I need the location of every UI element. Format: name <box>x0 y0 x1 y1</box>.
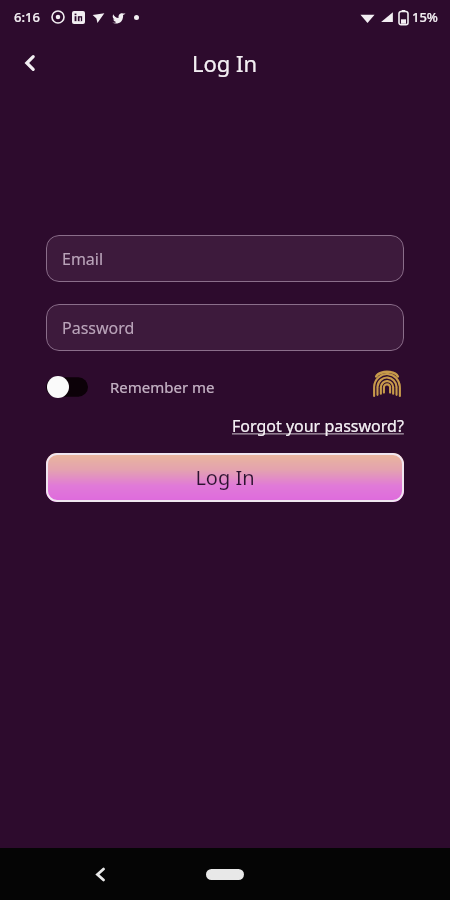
button[interactable]: Forgot your password? <box>232 415 404 437</box>
staticText: Email <box>62 248 104 270</box>
button[interactable]: Remember me <box>46 376 219 398</box>
staticText: Password <box>62 317 135 339</box>
button[interactable]: Log In <box>46 453 404 502</box>
button[interactable]: Fingerprint login <box>370 371 404 403</box>
staticText: Log In <box>195 464 255 491</box>
button[interactable]: Password <box>46 304 404 351</box>
button[interactable]: Home <box>206 869 244 880</box>
staticText: Forgot your password? <box>232 415 404 437</box>
button[interactable]: Back <box>78 852 122 896</box>
button[interactable]: Email <box>46 235 404 282</box>
staticText: 6:16 <box>14 8 40 26</box>
button[interactable]: Back <box>8 41 52 85</box>
staticText: Remember me <box>110 377 215 397</box>
staticText: Log In <box>192 48 258 78</box>
staticText: 15% <box>412 8 438 26</box>
